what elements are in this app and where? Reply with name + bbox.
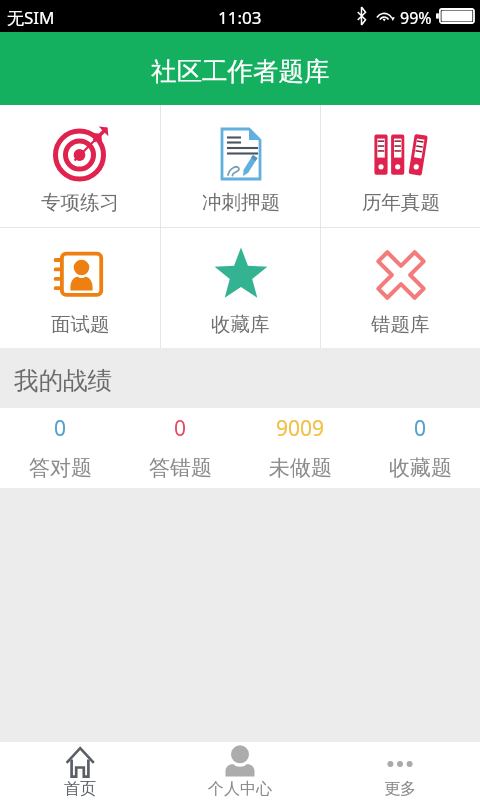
other: Wi-Fi: [376, 8, 395, 23]
button[interactable]: 更多: [320, 742, 480, 800]
button[interactable]: 首页: [0, 742, 160, 800]
staticText: 99%: [400, 7, 432, 29]
button[interactable]: 0: [0, 408, 120, 488]
button[interactable]: 9009: [240, 408, 360, 488]
staticText: 11:03: [218, 6, 262, 29]
staticText: 无SIM: [7, 6, 55, 29]
staticText: 面试题: [51, 312, 110, 337]
button[interactable]: 0: [120, 408, 240, 488]
staticText: 个人中心: [208, 779, 272, 799]
button[interactable]: 专项练习: [0, 105, 160, 227]
staticText: 专项练习: [41, 190, 119, 215]
staticText: 社区工作者题库: [151, 55, 330, 87]
staticText: 我的战绩: [14, 365, 112, 396]
button[interactable]: 面试题: [0, 228, 160, 348]
staticText: 历年真题: [362, 190, 440, 215]
staticText: 答错题: [149, 455, 212, 481]
staticText: 9009: [276, 414, 325, 443]
button[interactable]: 个人中心: [160, 742, 320, 800]
staticText: 冲刺押题: [202, 190, 280, 215]
button[interactable]: 历年真题: [321, 105, 480, 227]
staticText: 0: [414, 414, 427, 443]
button[interactable]: 错题库: [321, 228, 480, 348]
staticText: 0: [54, 414, 67, 443]
button[interactable]: 收藏库: [161, 228, 320, 348]
staticText: 首页: [64, 779, 96, 799]
staticText: 错题库: [371, 312, 430, 337]
staticText: 0: [174, 414, 187, 443]
staticText: 答对题: [29, 455, 92, 481]
staticText: 收藏题: [389, 455, 452, 481]
button[interactable]: 冲刺押题: [161, 105, 320, 227]
button[interactable]: 0: [360, 408, 480, 488]
other: Bluetooth: [357, 7, 366, 25]
staticText: 更多: [384, 779, 416, 799]
staticText: 收藏库: [211, 312, 270, 337]
staticText: 未做题: [269, 455, 332, 481]
other: Battery 99 percent: [436, 9, 474, 23]
